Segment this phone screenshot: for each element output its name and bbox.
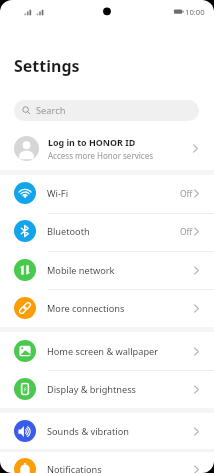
staticText: More connections [47,302,125,315]
staticText: Log in to HONOR ID [48,136,136,148]
staticText: Wi-Fi [47,187,69,200]
staticText: Access more Honor services [48,150,153,161]
button[interactable]: Bluetooth [0,212,214,250]
staticText: Sounds & vibration [47,425,129,438]
staticText: Off [180,188,193,199]
staticText: Search [36,104,66,117]
button[interactable]: More connections [0,289,214,327]
staticText: Display & brightness [47,383,136,396]
staticText: Mobile network [47,264,115,277]
staticText: Notifications [47,463,102,473]
button[interactable]: Mobile network [0,251,214,289]
button[interactable]: Log in to HONOR ID [0,126,214,170]
button[interactable]: Search [14,100,199,121]
button[interactable]: Notifications [0,450,214,473]
button[interactable]: Wi-Fi [0,174,214,212]
staticText: 10:00 [185,7,205,17]
staticText: Home screen & wallpaper [47,345,159,358]
staticText: Bluetooth [47,225,90,238]
button[interactable]: Display & brightness [0,370,214,408]
staticText: Off [180,226,193,237]
button[interactable]: Home screen & wallpaper [0,332,214,370]
staticText: Settings [14,55,80,77]
button[interactable]: Sounds & vibration [0,412,214,450]
